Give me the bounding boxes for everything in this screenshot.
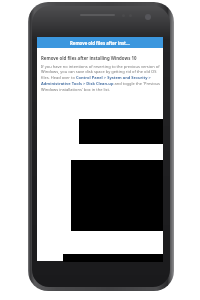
staticText: Remove old files after installing Window…: [41, 55, 137, 61]
button[interactable]: Remove old files after inst...: [37, 37, 163, 48]
staticText: Remove old files after inst...: [70, 40, 130, 46]
staticText: If you have no intentions of reverting t…: [41, 64, 161, 92]
